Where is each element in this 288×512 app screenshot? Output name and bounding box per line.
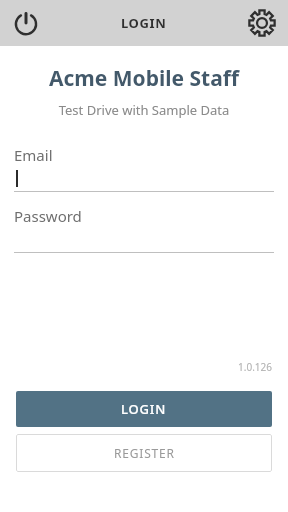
staticText: LOGIN — [121, 14, 167, 32]
button[interactable]: Power — [6, 3, 46, 43]
staticText: Password — [14, 206, 82, 226]
button[interactable]: Email — [14, 145, 274, 192]
staticText: Test Drive with Sample Data — [0, 101, 288, 119]
staticText: Email — [14, 145, 53, 165]
staticText: Acme Mobile Staff — [0, 64, 288, 93]
button[interactable]: Password — [14, 206, 274, 253]
staticText: REGISTER — [114, 445, 175, 461]
button[interactable]: REGISTER — [16, 434, 272, 472]
button[interactable]: Settings — [242, 3, 282, 43]
staticText: LOGIN — [121, 400, 167, 418]
button[interactable]: LOGIN — [16, 391, 272, 427]
staticText: 1.0.126 — [0, 360, 272, 374]
